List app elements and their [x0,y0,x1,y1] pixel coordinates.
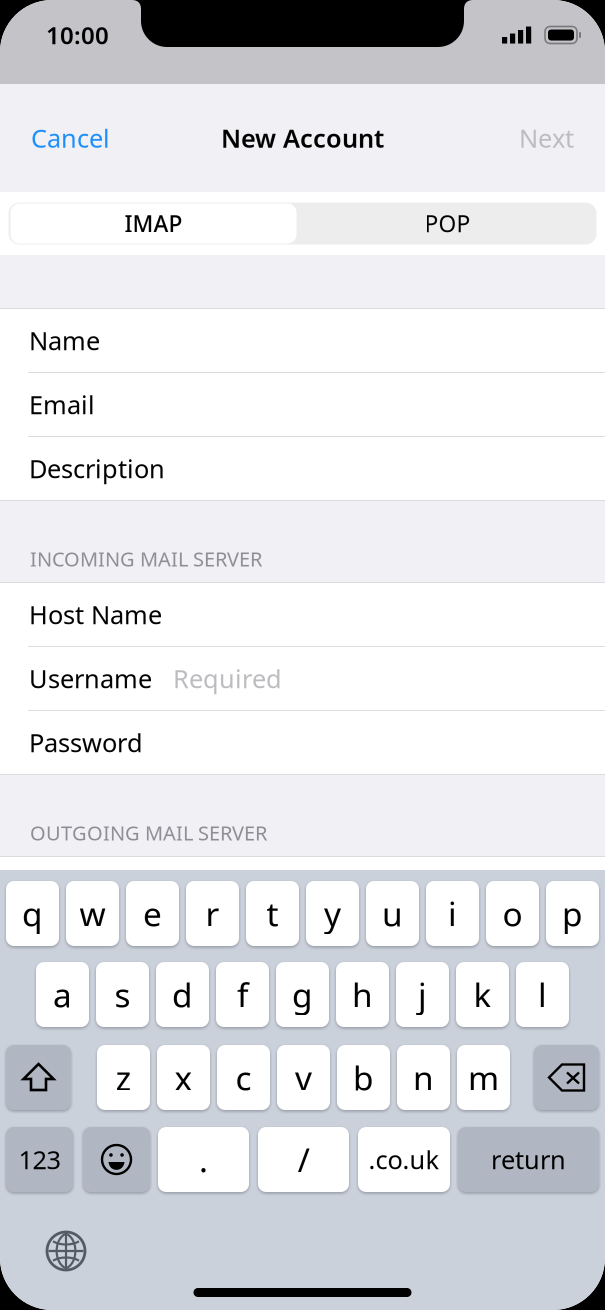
staticText: New Account [221,121,384,155]
button[interactable]: Name [0,309,605,372]
button[interactable]: k [456,962,509,1027]
button[interactable]: z [97,1045,150,1110]
staticText: q [22,891,43,936]
staticText: return [491,1143,566,1176]
staticText: u [382,891,403,936]
staticText: Host Name [29,598,162,631]
staticText: Password [29,726,143,759]
staticText: d [172,972,193,1017]
staticText: Cancel [31,121,110,155]
button[interactable]: d [156,962,209,1027]
button[interactable]: n [397,1045,450,1110]
button[interactable]: q [6,881,59,946]
button[interactable]: Password [0,711,605,774]
staticText: Email [29,388,95,421]
staticText: Required [173,662,282,695]
staticText: c [235,1055,251,1100]
button[interactable]: g [276,962,329,1027]
staticText: 123 [18,1143,60,1176]
button[interactable]: t [246,881,299,946]
staticText: z [115,1055,131,1100]
staticText: Name [29,324,100,357]
button[interactable]: p [546,881,599,946]
button[interactable]: Description [0,437,605,500]
button[interactable]: x [157,1045,210,1110]
staticText: r [205,891,219,936]
staticText: 10:00 [46,19,109,51]
staticText: Username [29,662,152,695]
staticText: f [237,972,248,1017]
staticText: l [538,972,547,1017]
button[interactable]: y [306,881,359,946]
staticText: v [295,1055,312,1100]
button[interactable]: s [96,962,149,1027]
staticText: e [143,891,162,936]
button[interactable]: Next [488,94,605,182]
button[interactable]: w [66,881,119,946]
button[interactable]: f [216,962,269,1027]
button[interactable]: Host Name [0,583,605,646]
staticText: n [413,1055,434,1100]
button[interactable]: e [126,881,179,946]
button[interactable]: 123 [6,1127,73,1192]
button[interactable]: . [158,1127,249,1192]
button[interactable]: j [396,962,449,1027]
button[interactable]: u [366,881,419,946]
staticText: INCOMING MAIL SERVER [30,545,262,572]
button[interactable]: Emoji [83,1127,150,1192]
staticText: t [266,891,278,936]
staticText: m [468,1055,499,1100]
staticText: w [79,891,105,936]
button[interactable]: .co.uk [358,1127,450,1192]
button[interactable]: Next keyboard [0,1222,103,1280]
staticText: s [114,972,130,1017]
staticText: . [199,1137,208,1182]
staticText: Description [29,452,165,485]
button[interactable]: Username [0,647,605,710]
button[interactable]: r [186,881,239,946]
staticText: k [473,972,491,1017]
button[interactable]: o [486,881,539,946]
staticText: .co.uk [368,1143,439,1176]
staticText: i [448,891,457,936]
button[interactable]: Delete [534,1045,599,1110]
staticText: POP [424,208,470,238]
button[interactable]: return [458,1127,599,1192]
staticText: x [174,1055,192,1100]
staticText: p [562,891,583,936]
button[interactable]: IMAP [8,202,298,244]
button[interactable]: l [516,962,569,1027]
button[interactable]: v [277,1045,330,1110]
button[interactable]: m [457,1045,510,1110]
staticText: j [418,972,427,1017]
staticText: a [53,972,72,1017]
button[interactable]: Email [0,373,605,436]
button[interactable]: c [217,1045,270,1110]
staticText: IMAP [124,208,182,238]
staticText: Next [519,121,574,155]
button[interactable]: a [36,962,89,1027]
button[interactable]: / [258,1127,349,1192]
button[interactable]: POP [298,202,596,244]
staticText: / [297,1137,309,1182]
staticText: OUTGOING MAIL SERVER [30,819,267,846]
staticText: o [502,891,522,936]
button[interactable]: Cancel [0,94,141,182]
staticText: h [352,972,373,1017]
button[interactable]: b [337,1045,390,1110]
button[interactable]: h [336,962,389,1027]
staticText: b [353,1055,374,1100]
button[interactable]: i [426,881,479,946]
staticText: g [292,972,313,1017]
button[interactable]: Shift [6,1045,71,1110]
staticText: y [324,891,341,936]
